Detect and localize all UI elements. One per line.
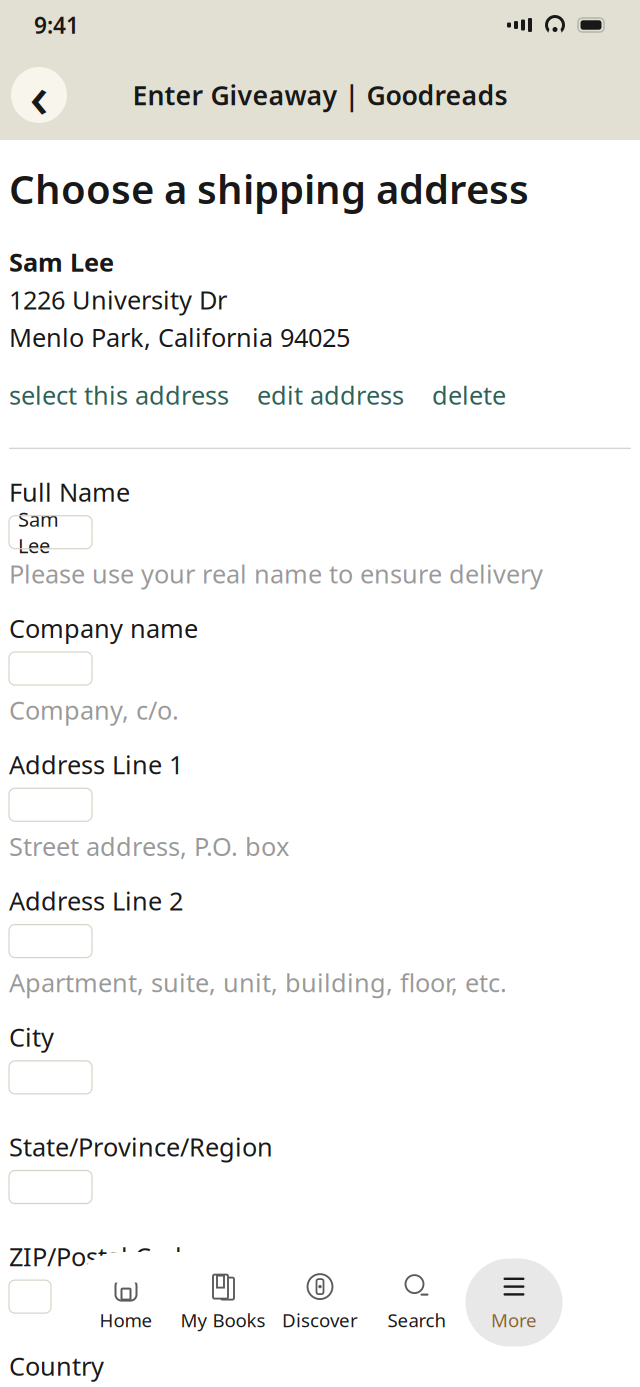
staticText: State/Province/Region — [9, 1130, 273, 1163]
staticText: Company name — [9, 611, 198, 645]
staticText: 1226 University Dr — [9, 283, 227, 316]
button[interactable]: More — [465, 1258, 562, 1346]
staticText: delete — [432, 378, 506, 412]
button[interactable]: delete — [432, 378, 506, 412]
staticText: Country — [9, 1349, 104, 1383]
staticText: edit address — [257, 378, 404, 412]
staticText: Enter Giveaway | Goodreads — [132, 77, 507, 113]
staticText: select this address — [9, 378, 229, 412]
button[interactable]: Sam Lee — [9, 516, 92, 549]
button[interactable] — [9, 925, 92, 958]
staticText: Home — [99, 1308, 152, 1332]
staticText: Street address, P.O. box — [9, 829, 289, 863]
button[interactable]: Back — [11, 67, 67, 123]
button[interactable]: My Books — [174, 1258, 271, 1346]
staticText: Apartment, suite, unit, building, floor,… — [9, 966, 507, 999]
staticText: Please use your real name to ensure deli… — [9, 557, 543, 590]
staticText: Sam Lee — [18, 506, 59, 559]
button[interactable] — [9, 788, 92, 821]
staticText: Search — [387, 1308, 446, 1332]
button[interactable]: Search — [368, 1258, 465, 1346]
staticText: Discover — [282, 1308, 358, 1332]
staticText: More — [491, 1308, 537, 1332]
staticText: My Books — [180, 1308, 265, 1332]
button[interactable] — [9, 1061, 92, 1094]
button[interactable] — [9, 1280, 51, 1313]
button[interactable]: Discover — [271, 1258, 368, 1346]
staticText: 9:41 — [34, 10, 79, 40]
button[interactable]: edit address — [257, 378, 404, 412]
staticText: ZIP/Postal Code — [9, 1239, 196, 1273]
button[interactable] — [9, 652, 92, 685]
staticText: Full Name — [9, 475, 130, 509]
staticText: Choose a shipping address — [9, 162, 529, 215]
button[interactable]: Home — [77, 1258, 174, 1346]
staticText: Address Line 1 — [9, 748, 183, 781]
button[interactable] — [9, 1170, 92, 1203]
staticText: City — [9, 1020, 54, 1054]
staticText: Menlo Park, California 94025 — [9, 320, 350, 354]
staticText: Company, c/o. — [9, 693, 179, 727]
staticText: ‹ — [29, 56, 48, 134]
staticText: Address Line 2 — [9, 884, 183, 917]
button[interactable]: select this address — [9, 378, 229, 412]
staticText: Sam Lee — [9, 245, 114, 279]
